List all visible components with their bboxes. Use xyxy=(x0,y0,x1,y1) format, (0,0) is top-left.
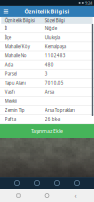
button[interactable]: Home xyxy=(37,189,57,202)
staticText: Öznitelik Bilgisi xyxy=(5,17,35,23)
button[interactable]: Measure xyxy=(31,177,43,189)
staticText: 7010,05 xyxy=(45,80,64,86)
staticText: 26 bk-a xyxy=(45,116,60,122)
button[interactable]: Menu xyxy=(0,6,12,17)
button[interactable]: Locate xyxy=(11,177,23,189)
button[interactable]: Taşınmaz Ekle xyxy=(0,124,94,138)
staticText: Arsa Toprakları xyxy=(45,107,75,113)
staticText: Mahalle No xyxy=(5,53,27,59)
staticText: Zemin Tip xyxy=(5,107,25,113)
staticText: Tapu Alanı xyxy=(5,80,26,86)
button[interactable]: Recent apps xyxy=(8,189,28,202)
staticText: Mahalle/Köy xyxy=(5,44,30,50)
staticText: Niğde xyxy=(45,25,57,31)
staticText: Mevkii xyxy=(5,98,17,104)
staticText: Kemalpaşa xyxy=(45,44,66,50)
staticText: Arsa xyxy=(45,89,54,95)
staticText: Parsel xyxy=(5,71,17,77)
staticText: Pafta xyxy=(5,116,16,122)
staticText: Ada xyxy=(5,62,13,68)
staticText: İl xyxy=(5,25,7,31)
staticText: 1102483 xyxy=(45,53,66,59)
staticText: Taşınmaz Ekle xyxy=(31,127,63,135)
staticText: Sözel Bilgi xyxy=(45,17,65,23)
staticText: 480 xyxy=(45,62,54,68)
staticText: 3 xyxy=(45,71,48,77)
button[interactable]: Draw xyxy=(51,177,63,189)
staticText: İlçe xyxy=(5,34,11,40)
staticText: 9:24 xyxy=(85,0,92,6)
staticText: Öznitelik Bilgisi xyxy=(24,8,69,15)
button[interactable]: Back xyxy=(65,189,85,202)
staticText: ‹ xyxy=(74,191,76,200)
staticText: Ulukışla xyxy=(45,34,60,40)
button[interactable]: Search xyxy=(71,177,83,189)
staticText: Vasfı xyxy=(5,89,15,95)
